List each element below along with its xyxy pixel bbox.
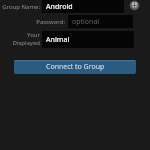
button[interactable]: Connect to Group [14, 60, 136, 74]
staticText: optional [72, 17, 100, 27]
button[interactable]: optional [68, 15, 133, 28]
staticText: Password: [0, 18, 65, 26]
staticText: Your Displayed Name: [0, 31, 40, 48]
staticText: Group Name: [0, 3, 40, 11]
staticText: Connect to Group [46, 62, 105, 72]
staticText: Animal [46, 35, 70, 45]
staticText: Android [46, 2, 73, 12]
button[interactable]: Choose group [129, 0, 140, 11]
button[interactable]: Android [42, 0, 124, 13]
button[interactable]: Animal [42, 31, 134, 48]
